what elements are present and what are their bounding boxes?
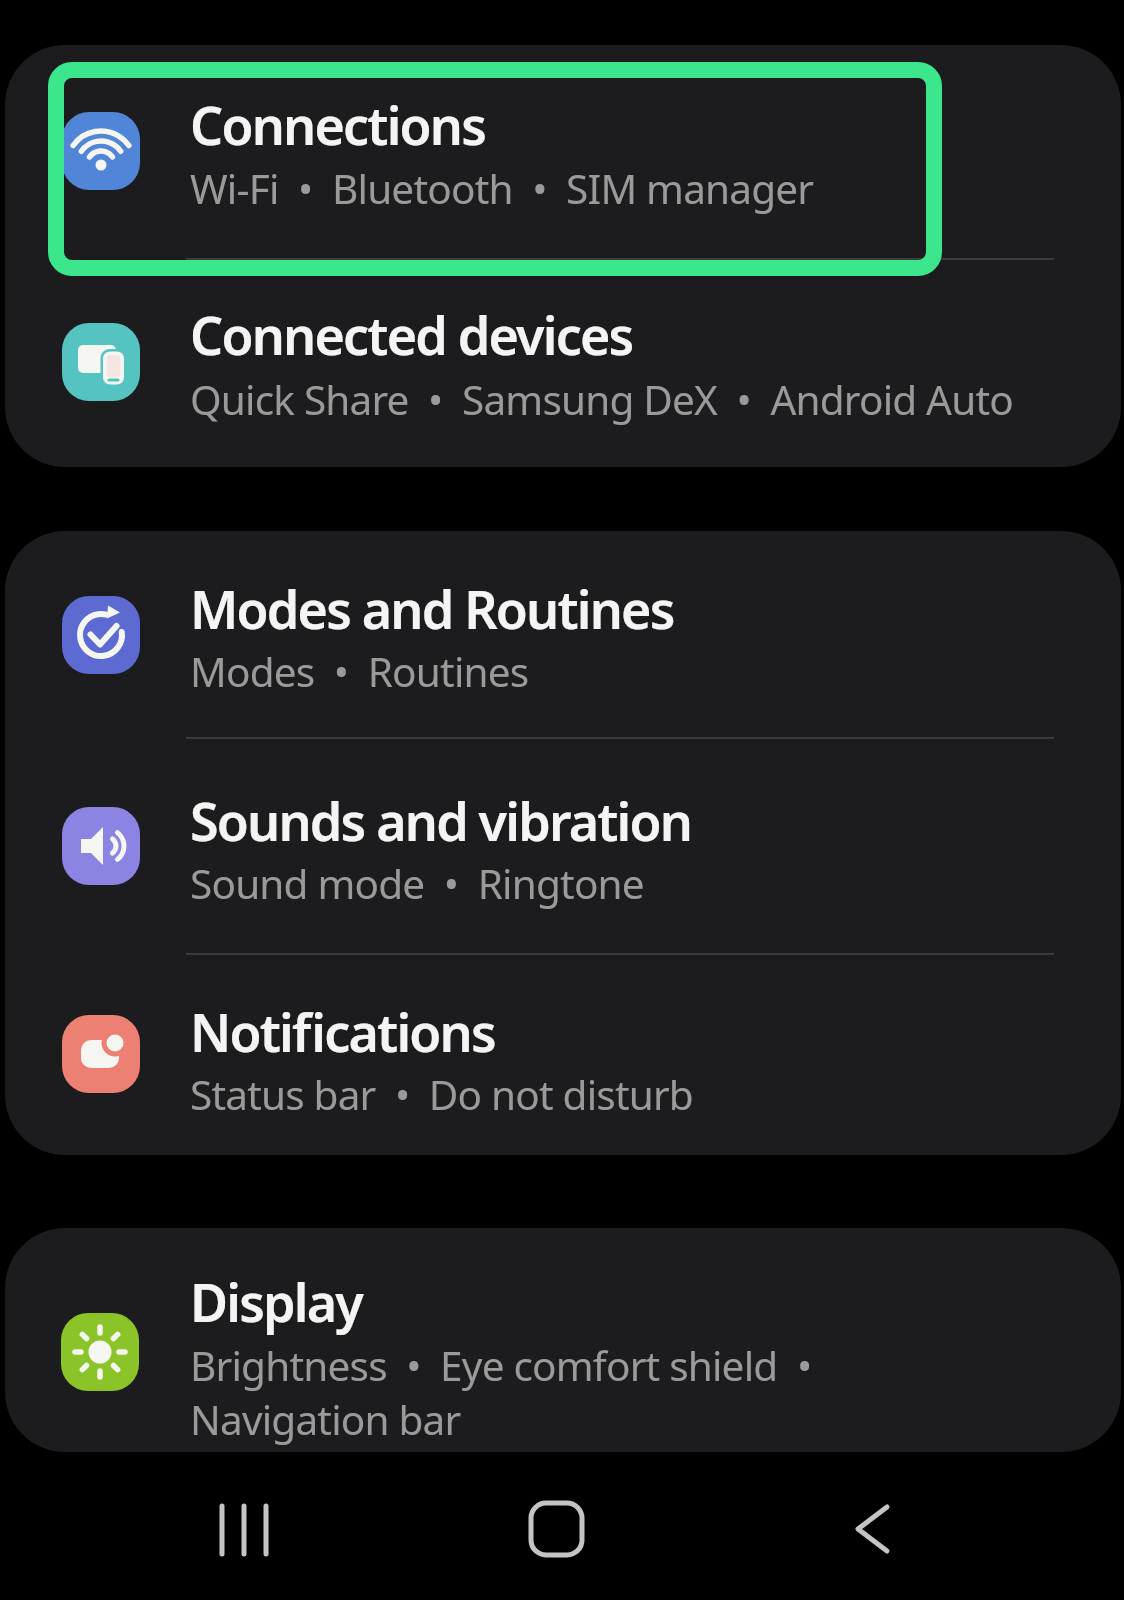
button[interactable] [5,531,1121,738]
button[interactable] [830,1490,920,1570]
staticText: Modes • Routines [190,644,529,699]
button[interactable] [5,738,1121,953]
staticText: Quick Share • Samsung DeX • Android Auto [190,372,1013,427]
staticText: Status bar • Do not disturb [190,1067,693,1122]
staticText: Connections [190,89,486,160]
staticText: Display [190,1266,363,1337]
button[interactable] [5,45,1121,259]
staticText: Sounds and vibration [190,785,692,856]
staticText: Sound mode • Ringtone [190,856,644,911]
staticText: Brightness • Eye comfort shield • Naviga… [190,1338,812,1446]
button[interactable] [520,1490,600,1570]
button[interactable] [190,1490,300,1570]
staticText: Notifications [190,996,495,1067]
button[interactable] [5,1228,1121,1452]
button[interactable] [5,259,1121,467]
staticText: Wi-Fi • Bluetooth • SIM manager [190,161,814,216]
staticText: Connected devices [190,299,633,370]
button[interactable] [5,953,1121,1155]
staticText: Modes and Routines [190,573,674,644]
